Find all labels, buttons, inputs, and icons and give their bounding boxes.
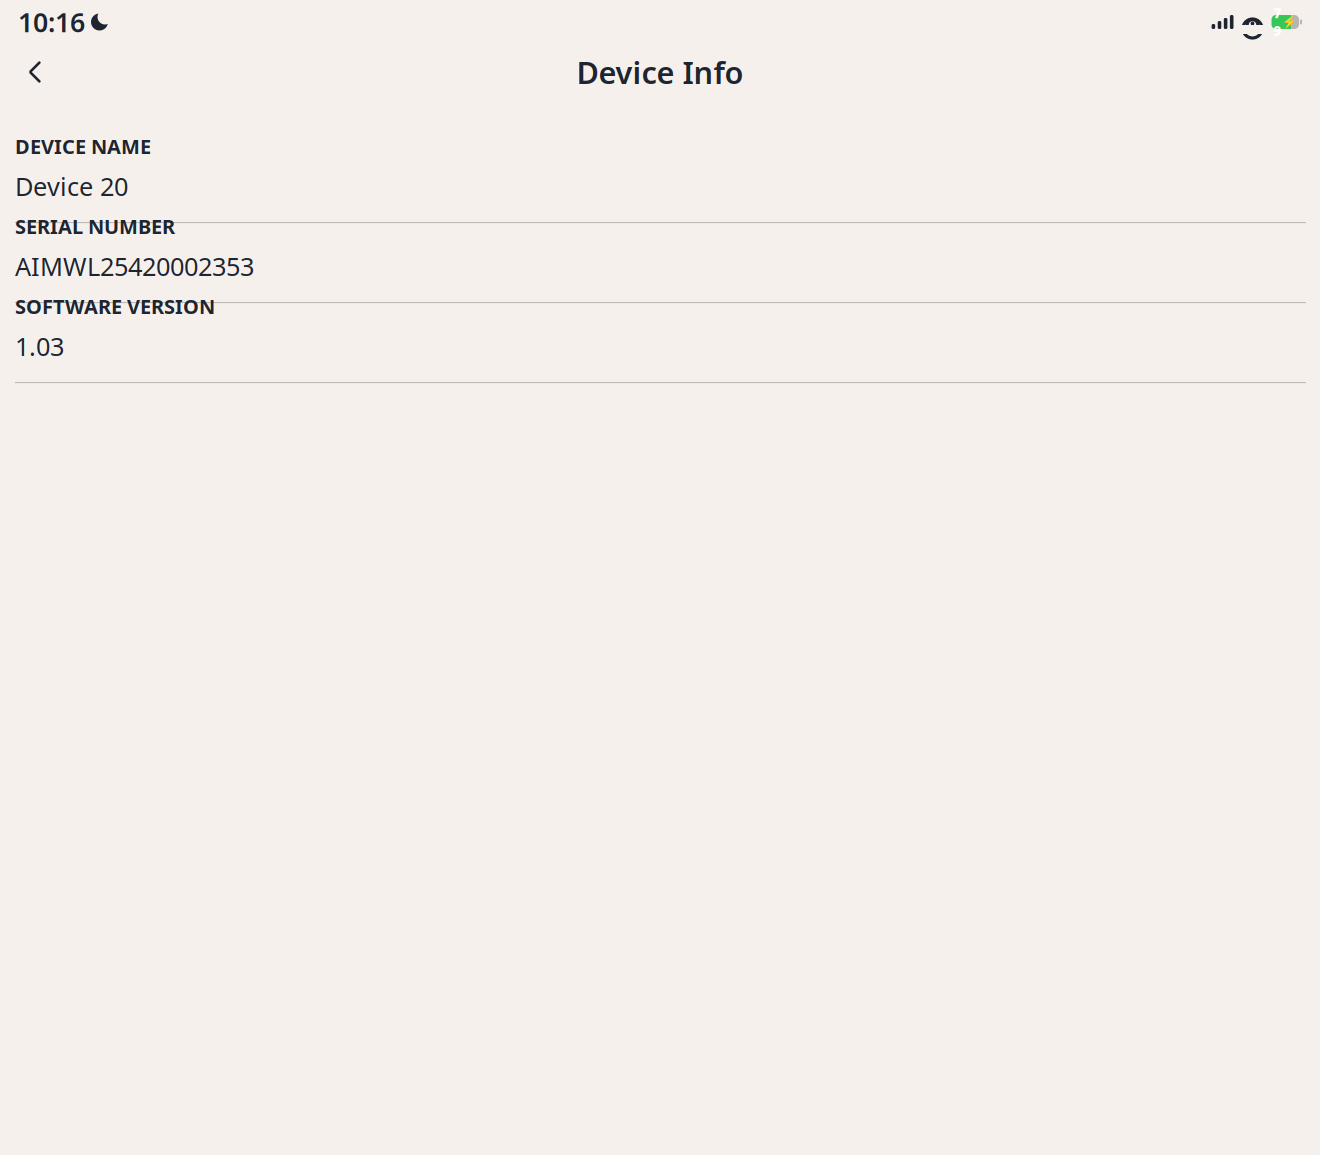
- staticText: Device Info: [576, 52, 743, 92]
- staticText: 1.03: [15, 329, 64, 363]
- staticText: ⚡: [1282, 15, 1297, 29]
- staticText: SERIAL NUMBER: [15, 213, 175, 239]
- staticText: SOFTWARE VERSION: [15, 293, 215, 319]
- staticText: 79: [1273, 4, 1281, 40]
- staticText: AIMWL25420002353: [15, 249, 254, 283]
- button[interactable]: Back: [13, 50, 57, 94]
- staticText: 10:16: [18, 4, 85, 40]
- staticText: Device 20: [15, 169, 128, 203]
- staticText: DEVICE NAME: [15, 133, 151, 159]
